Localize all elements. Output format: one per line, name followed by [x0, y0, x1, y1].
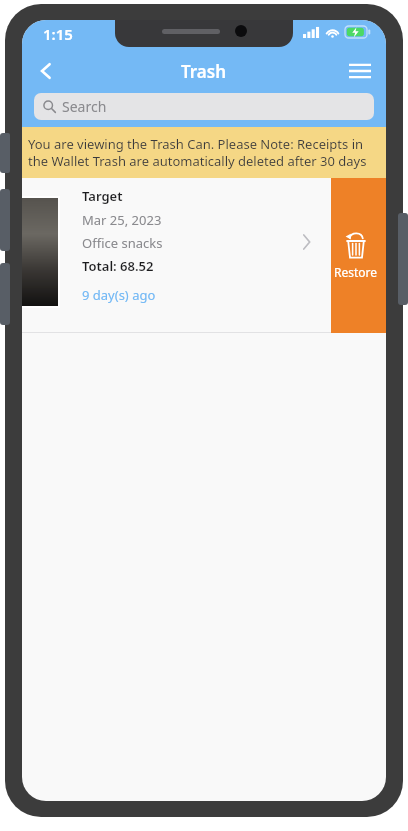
staticText: Total: 68.52 [82, 257, 154, 275]
staticText: Office snacks [82, 234, 163, 252]
button[interactable]: Menu [338, 50, 382, 92]
staticText: Trash [181, 60, 227, 83]
staticText: 9 day(s) ago [82, 286, 156, 304]
staticText: Mar 25, 2023 [82, 211, 162, 229]
button[interactable]: Restore [325, 178, 386, 333]
staticText: Restore [334, 264, 378, 280]
button[interactable]: Back [24, 50, 68, 92]
staticText: Target [82, 187, 123, 205]
button[interactable]: Target [22, 178, 331, 333]
staticText: Search [62, 97, 107, 116]
button[interactable]: Search [34, 93, 374, 120]
staticText: You are viewing the Trash Can. Please No… [28, 135, 380, 170]
staticText: 1:15 [43, 24, 73, 44]
